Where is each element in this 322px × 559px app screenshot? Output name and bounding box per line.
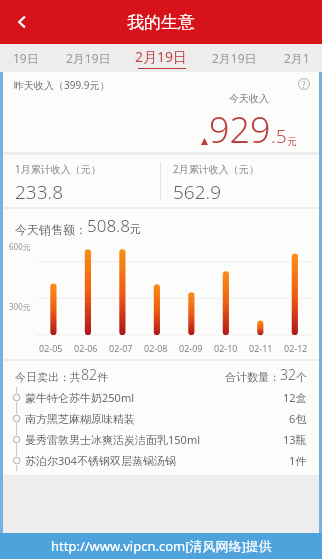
staticText: 02-12 [284,342,308,354]
staticText: 合计数量： [225,370,280,384]
staticText: 2月19日 [66,50,111,66]
staticText: 2月1 [284,50,310,66]
staticText: 我的生意 [127,12,195,33]
button[interactable]: 南方黑芝麻糊原味精装 [3,408,319,429]
staticText: 蒙牛特仑苏牛奶250ml [25,390,283,405]
button[interactable]: 曼秀雷敦男士冰爽活炭洁面乳150ml [3,429,319,450]
button[interactable]: 19日 [0,44,52,72]
staticText: 02-05 [39,342,63,354]
staticText: 件 [97,370,108,384]
staticText: 82 [81,365,97,384]
staticText: 233.8 [15,179,64,205]
staticText: 19日 [13,50,39,66]
staticText: 今天收入 [229,92,269,105]
staticText: 昨天收入（399.9元） [14,78,110,92]
staticText: 600元 [9,241,31,252]
button[interactable]: 2月累计收入（元） [161,155,319,207]
staticText: 个 [296,370,307,384]
staticText: .5 [271,123,287,149]
staticText: 今天销售额： [15,222,87,237]
button[interactable]: 苏泊尔304不锈钢双层蒸锅汤锅 [3,450,319,471]
button[interactable]: 蒙牛特仑苏牛奶250ml [3,387,319,408]
staticText: 今日卖出：共 [15,370,81,384]
staticText: 苏泊尔304不锈钢双层蒸锅汤锅 [25,453,289,468]
staticText: 南方黑芝麻糊原味精装 [25,412,289,426]
staticText: http://www.vipcn.com[清风网络]提供 [51,537,272,555]
staticText: 2月19日 [135,47,188,66]
staticText: 02-10 [214,342,238,354]
button[interactable]: 2月19日 [125,44,198,72]
staticText: 300元 [9,301,31,312]
staticText: 6包 [289,411,307,426]
staticText: ? [302,79,306,90]
button[interactable]: 2月1 [271,44,322,72]
staticText: 曼秀雷敦男士冰爽活炭洁面乳150ml [25,432,283,447]
staticText: 13瓶 [283,432,307,447]
staticText: 562.9 [173,179,222,205]
staticText: 2月19日 [212,50,257,66]
staticText: 02-06 [74,342,98,354]
staticText: 02-08 [144,342,168,354]
button[interactable]: 2月19日 [198,44,271,72]
staticText: 12盒 [283,390,307,405]
button[interactable]: Help [295,75,313,93]
staticText: 02-11 [249,342,273,354]
staticText: 元 [130,222,141,236]
staticText: 1月累计收入（元） [15,162,101,176]
staticText: 32 [280,365,296,384]
button[interactable]: 2月19日 [52,44,125,72]
staticText: 508.8 [87,214,130,237]
staticText: 02-09 [179,342,203,354]
button[interactable]: Back [0,0,44,44]
staticText: 929 [209,105,271,152]
staticText: 元 [287,135,297,148]
staticText: 1件 [289,453,307,468]
staticText: 2月累计收入（元） [173,162,259,176]
staticText: 02-07 [109,342,133,354]
button[interactable]: 1月累计收入（元） [3,155,160,207]
